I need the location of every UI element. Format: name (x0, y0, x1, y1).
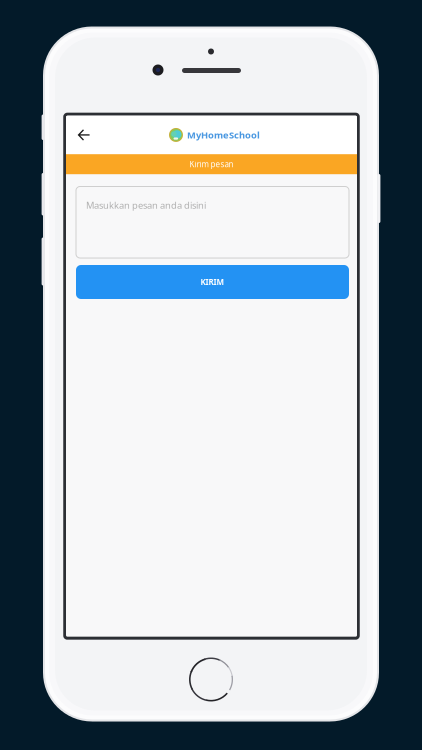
staticText: Masukkan pesan anda disini (86, 199, 206, 211)
staticText: MyHomeSchool (187, 129, 260, 141)
staticText: KIRIM (200, 277, 224, 287)
button[interactable]: Masukkan pesan anda disini (76, 186, 349, 258)
button[interactable]: Home (189, 657, 233, 701)
button[interactable]: Back (69, 116, 99, 154)
staticText: Kirim pesan (189, 159, 233, 169)
button[interactable]: KIRIM (76, 265, 349, 299)
